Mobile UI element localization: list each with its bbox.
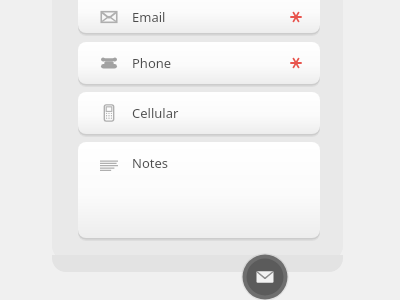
button[interactable]: Phone — [78, 42, 320, 84]
staticText: Phone — [132, 54, 172, 72]
button[interactable]: Cellular — [78, 92, 320, 134]
button[interactable]: Email — [78, 0, 320, 33]
staticText: Email — [132, 8, 166, 26]
button[interactable]: Compose email — [241, 253, 289, 300]
button[interactable]: Notes — [78, 142, 320, 238]
staticText: Notes — [132, 154, 168, 172]
staticText: Cellular — [132, 104, 179, 122]
